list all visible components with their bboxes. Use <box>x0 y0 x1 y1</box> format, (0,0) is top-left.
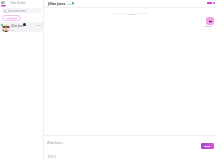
staticText: Online <box>17 1 26 5</box>
staticText: Meeting <box>204 25 213 28</box>
button[interactable]: Photo <box>51 155 53 158</box>
button[interactable]: Chat <box>10 1 17 5</box>
button[interactable]: Just someone <box>1 8 42 13</box>
staticText: NEW CHAT <box>7 17 17 19</box>
button[interactable]: Emoji <box>54 155 56 158</box>
staticText: Write here... <box>47 141 65 145</box>
staticText: Today <box>128 12 135 15</box>
staticText: is typing <box>64 2 74 5</box>
staticText: 10:43 <box>36 24 42 27</box>
staticText: Jillian Jane <box>11 24 24 28</box>
staticText: SEND <box>204 145 211 148</box>
button[interactable]: Meeting <box>206 17 214 25</box>
button[interactable]: All <box>1 1 6 5</box>
staticText: Hi <box>11 28 14 31</box>
staticText: All <box>1 1 5 5</box>
button[interactable]: Online <box>17 1 26 5</box>
button[interactable]: Jillian Jane <box>0 22 43 32</box>
staticText: Chat <box>10 1 17 5</box>
button[interactable]: Jillian Janes <box>48 2 66 6</box>
button[interactable]: SEND <box>201 143 214 149</box>
button[interactable]: NEW CHAT <box>2 15 21 21</box>
staticText: Just someone <box>8 9 26 13</box>
button[interactable]: Menu <box>207 2 215 4</box>
